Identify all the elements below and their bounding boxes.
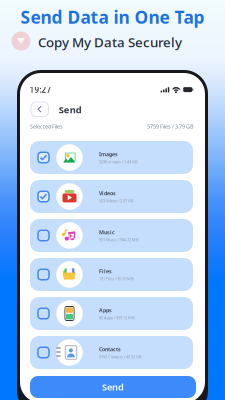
staticText: 3192 Contacts / 45.32 GB xyxy=(99,354,142,359)
staticText: 523 Videos / 2.37 GB xyxy=(99,198,134,203)
staticText: Apps xyxy=(99,307,112,314)
button[interactable]: Apps xyxy=(30,297,193,330)
staticText: Copy My Data Securely xyxy=(38,33,182,51)
button[interactable]: Send xyxy=(30,376,196,398)
staticText: Videos xyxy=(99,190,116,197)
button[interactable]: Images xyxy=(30,141,193,174)
staticText: Send Data in One Tap xyxy=(20,5,204,28)
button[interactable]: Music xyxy=(30,219,193,252)
staticText: 131 Files / 35.15 MB xyxy=(99,276,134,281)
staticText: Images xyxy=(99,151,118,158)
staticText: Music xyxy=(99,229,115,236)
staticText: 5236 images / 1.43 GB xyxy=(99,159,138,164)
staticText: 19:27 xyxy=(29,84,51,95)
staticText: Files xyxy=(99,268,112,275)
staticText: Send xyxy=(102,381,124,393)
staticText: Selected Files xyxy=(30,123,63,130)
staticText: 85 Apps / 925.12 MB xyxy=(99,315,135,320)
button[interactable]: Back xyxy=(31,102,48,116)
staticText: Send xyxy=(59,103,82,116)
button[interactable]: Contacts xyxy=(30,336,193,369)
button[interactable]: Files xyxy=(30,258,193,291)
button[interactable]: Videos xyxy=(30,180,193,213)
staticText: 5759 Files / 3.79 GB xyxy=(147,123,193,130)
staticText: 351 Music / 904.72 MB xyxy=(99,237,139,242)
staticText: Contacts xyxy=(99,346,121,353)
